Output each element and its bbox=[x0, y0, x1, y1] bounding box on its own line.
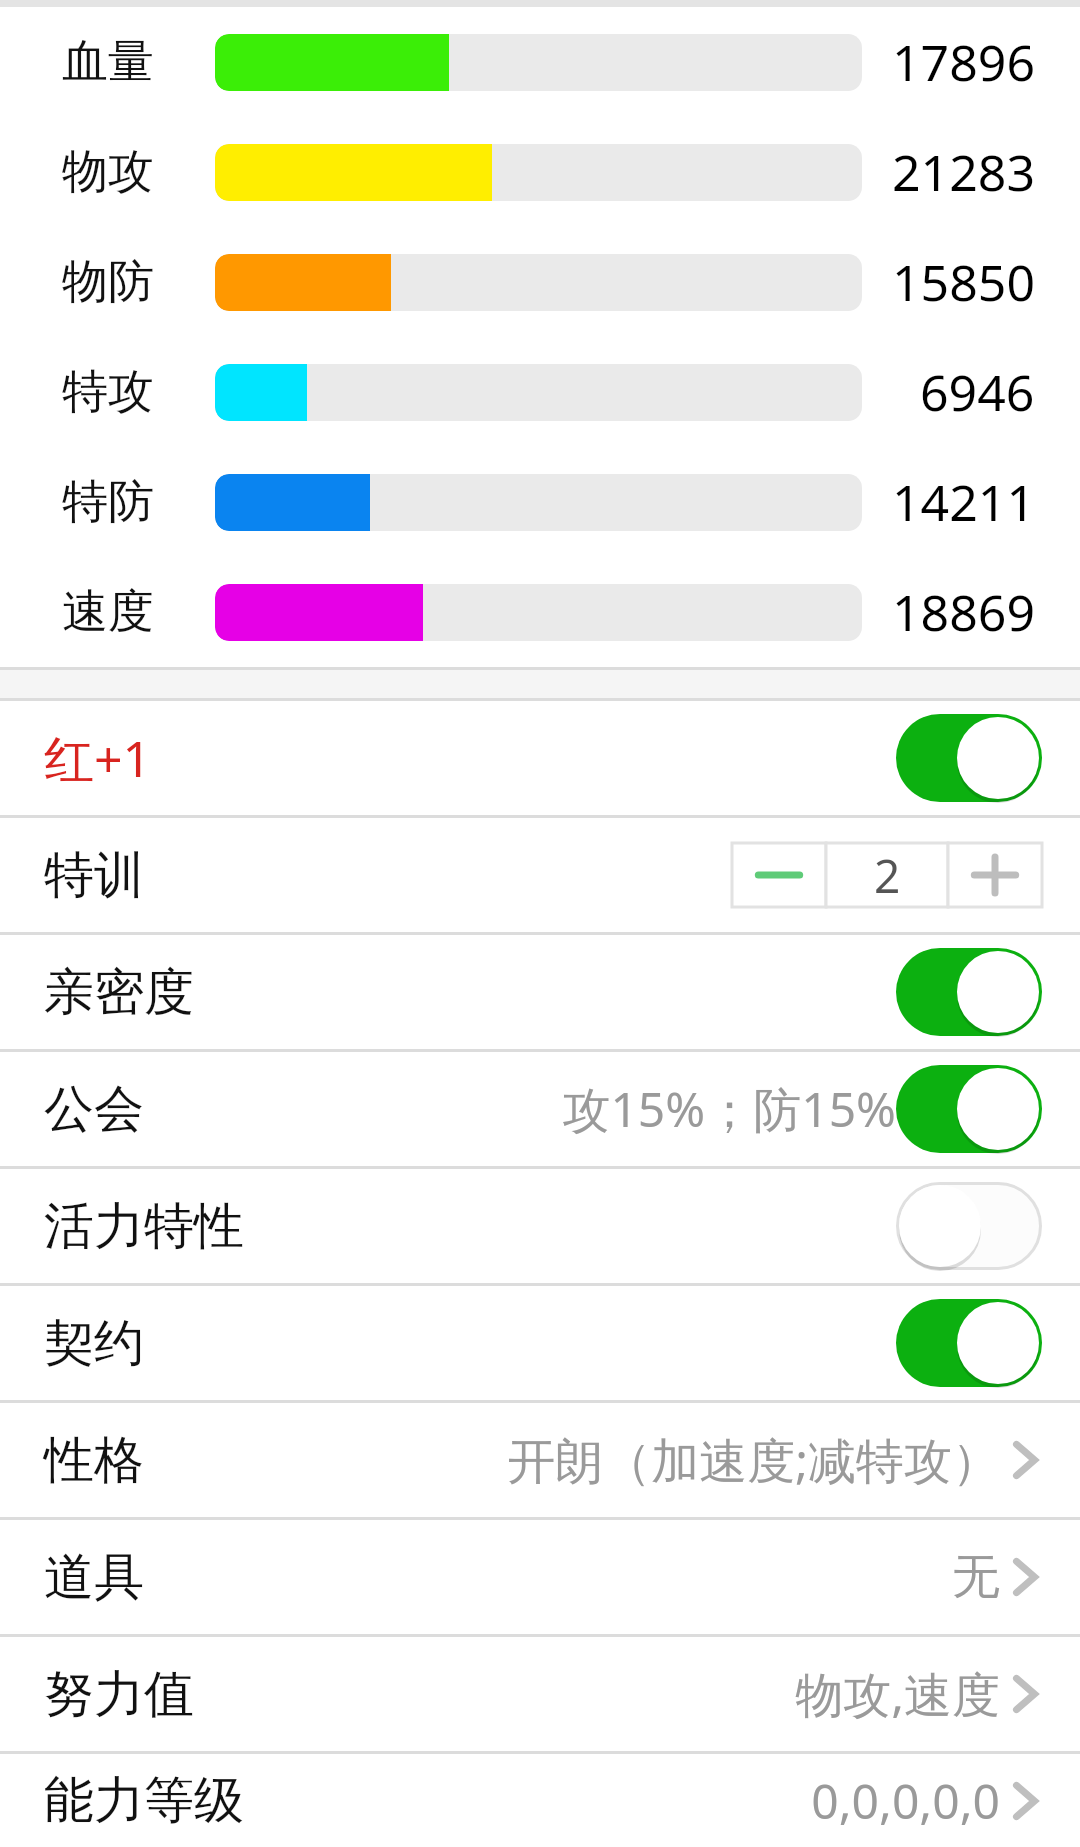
staticText: 物攻,速度 bbox=[795, 1661, 1000, 1727]
staticText: 道具 bbox=[44, 1546, 144, 1609]
button[interactable]: Toggle on bbox=[896, 948, 1042, 1036]
button[interactable]: 物攻 bbox=[0, 117, 1080, 227]
staticText: 2 bbox=[874, 844, 901, 907]
staticText: 特防 bbox=[62, 473, 154, 531]
staticText: 性格 bbox=[44, 1429, 144, 1492]
button[interactable]: 能力等级 bbox=[0, 1754, 1080, 1847]
button[interactable]: Toggle off bbox=[896, 1182, 1042, 1270]
staticText: 14211 bbox=[892, 468, 1035, 536]
staticText: 无 bbox=[952, 1547, 1000, 1607]
button[interactable]: 公会 bbox=[0, 1052, 1080, 1166]
staticText: 0,0,0,0,0 bbox=[811, 1768, 1000, 1833]
staticText: 公会 bbox=[44, 1078, 144, 1141]
staticText: 17896 bbox=[892, 28, 1035, 96]
staticText: 活力特性 bbox=[44, 1195, 244, 1258]
button[interactable]: Decrease bbox=[732, 843, 826, 907]
staticText: 能力等级 bbox=[44, 1769, 244, 1832]
staticText: 开朗（加速度;减特攻） bbox=[507, 1427, 1000, 1493]
button[interactable]: 道具 bbox=[0, 1520, 1080, 1634]
button[interactable]: 性格 bbox=[0, 1403, 1080, 1517]
button[interactable]: 活力特性 bbox=[0, 1169, 1080, 1283]
staticText: 特攻 bbox=[62, 363, 154, 421]
staticText: 物攻 bbox=[62, 143, 154, 201]
button[interactable]: 契约 bbox=[0, 1286, 1080, 1400]
staticText: 18869 bbox=[892, 578, 1035, 646]
staticText: 亲密度 bbox=[44, 961, 194, 1024]
staticText: 血量 bbox=[62, 33, 154, 91]
button[interactable]: 物防 bbox=[0, 227, 1080, 337]
button[interactable]: Toggle on bbox=[896, 714, 1042, 802]
button[interactable]: 特攻 bbox=[0, 337, 1080, 447]
staticText: 攻15%；防15% bbox=[562, 1076, 896, 1142]
button[interactable]: 特防 bbox=[0, 447, 1080, 557]
staticText: 15850 bbox=[892, 248, 1035, 316]
button[interactable]: 特训 bbox=[0, 818, 1080, 932]
staticText: 契约 bbox=[44, 1312, 144, 1375]
button[interactable]: 血量 bbox=[0, 7, 1080, 117]
staticText: 21283 bbox=[892, 138, 1035, 206]
button[interactable]: Increase bbox=[948, 843, 1042, 907]
staticText: 红+1 bbox=[44, 724, 152, 792]
staticText: 速度 bbox=[62, 583, 154, 641]
staticText: 特训 bbox=[44, 844, 144, 907]
button[interactable]: Toggle on bbox=[896, 1299, 1042, 1387]
button[interactable]: 努力值 bbox=[0, 1637, 1080, 1751]
staticText: 6946 bbox=[920, 358, 1035, 426]
button[interactable]: 速度 bbox=[0, 557, 1080, 667]
staticText: 物防 bbox=[62, 253, 154, 311]
button[interactable]: 亲密度 bbox=[0, 935, 1080, 1049]
button[interactable]: 红+1 bbox=[0, 701, 1080, 815]
staticText: 努力值 bbox=[44, 1663, 194, 1726]
button[interactable]: Toggle on bbox=[896, 1065, 1042, 1153]
